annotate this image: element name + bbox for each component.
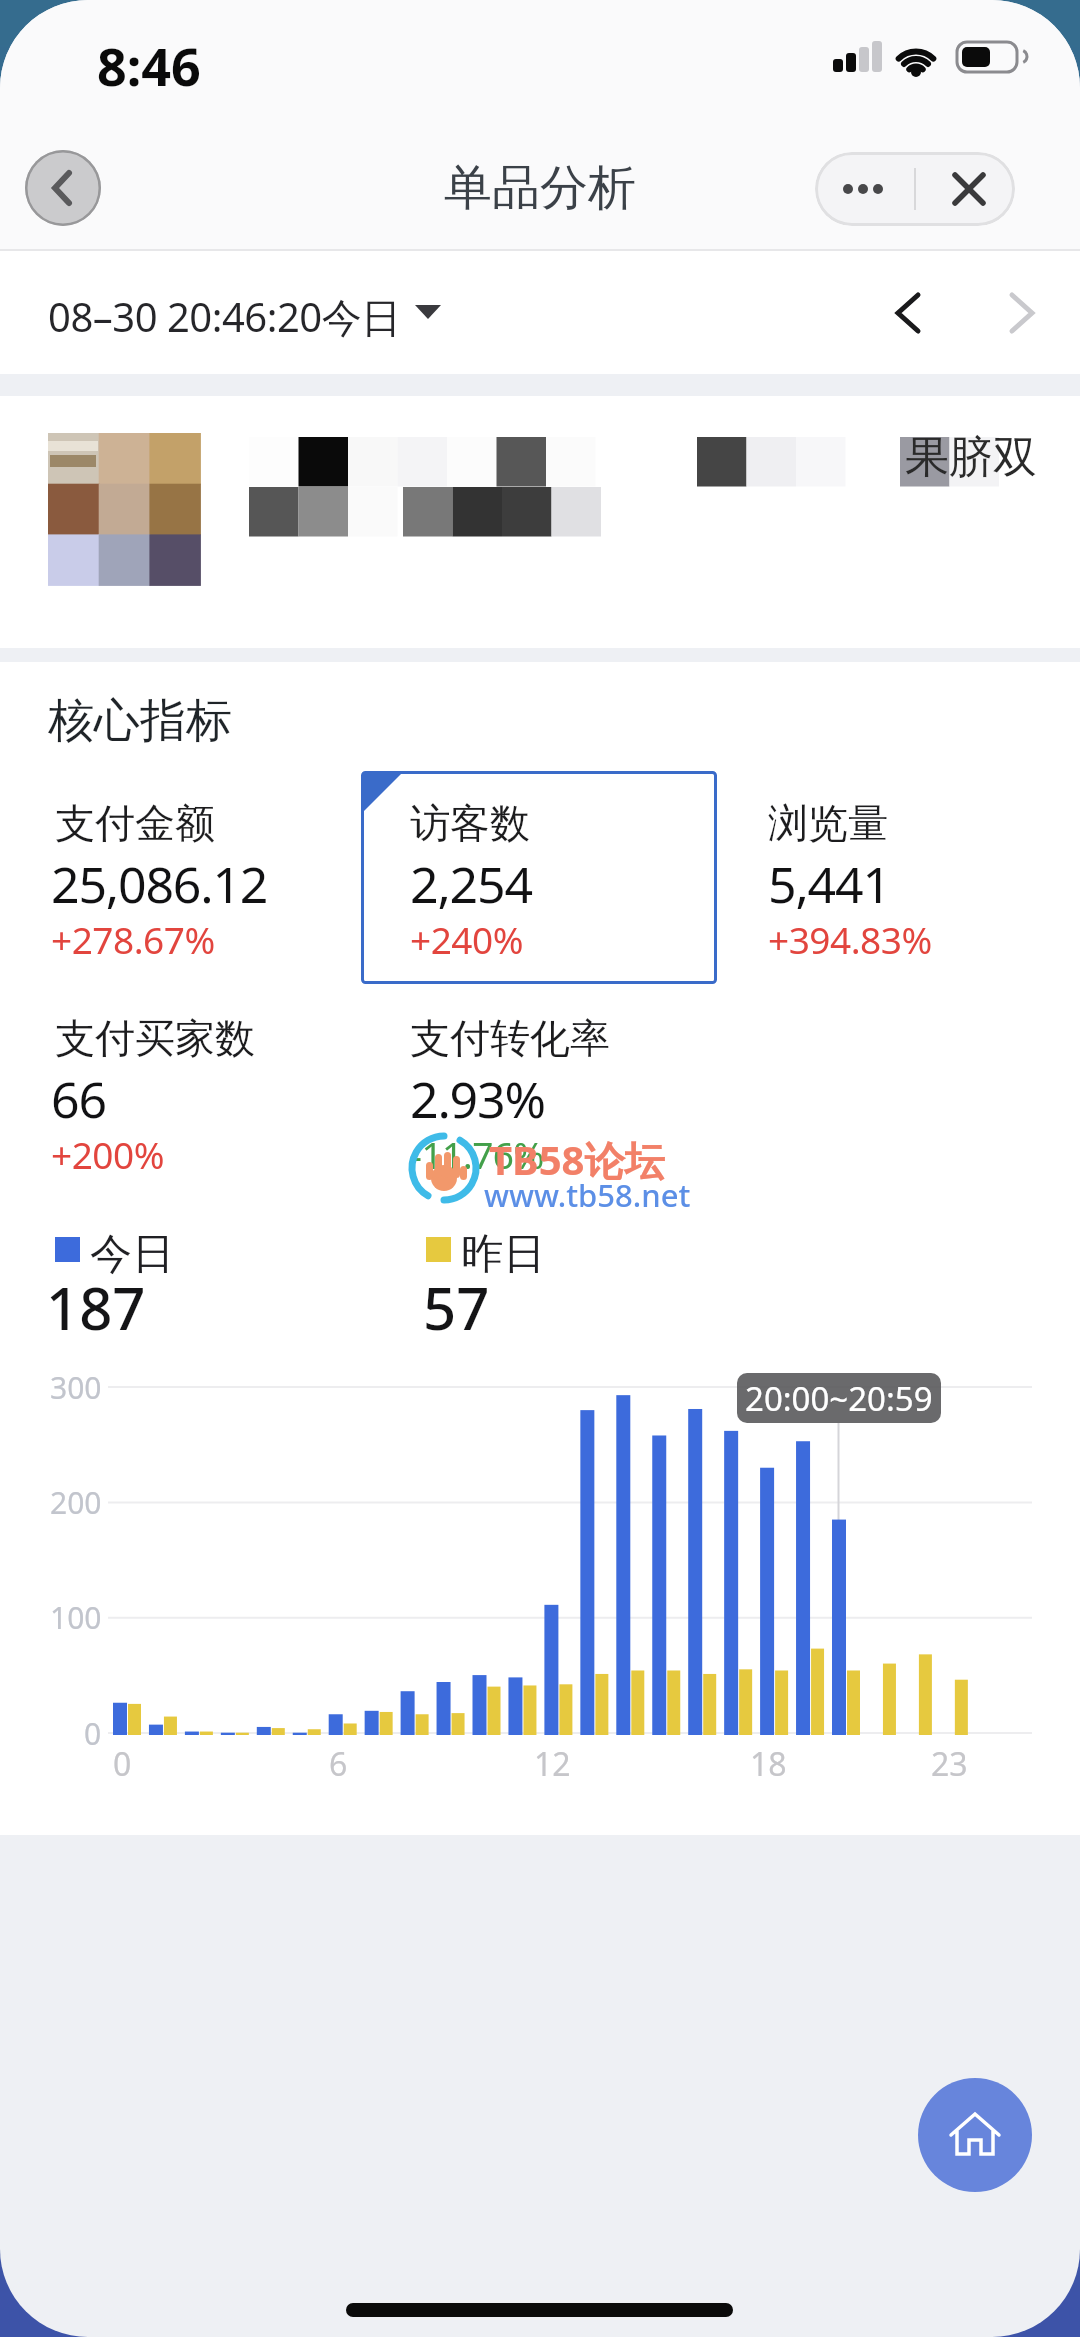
button[interactable] [915, 152, 1015, 226]
staticText: TB58论坛 [489, 1132, 665, 1187]
staticText: 25,086.12 [51, 850, 268, 918]
button[interactable] [25, 150, 101, 226]
staticText: 23 [931, 1742, 968, 1784]
staticText: 6 [329, 1742, 348, 1784]
staticText: 200 [50, 1482, 102, 1523]
staticText: 12 [534, 1742, 571, 1784]
staticText: 果脐双 [905, 430, 1037, 485]
staticText: 支付转化率 [410, 1013, 610, 1063]
staticText: 2,254 [410, 850, 532, 918]
button[interactable] [815, 152, 915, 226]
staticText: 单品分析 [444, 158, 636, 218]
staticText: 0 [84, 1713, 102, 1754]
staticText: 66 [51, 1065, 106, 1133]
staticText: 访客数 [410, 798, 530, 848]
staticText: 0 [113, 1742, 132, 1784]
staticText: 浏览量 [768, 798, 888, 848]
staticText: 5,441 [768, 850, 890, 918]
staticText: 57 [423, 1268, 490, 1347]
staticText: 187 [46, 1268, 146, 1347]
button[interactable] [361, 771, 717, 984]
staticText: +278.67% [51, 914, 215, 964]
staticText: 20:00~20:59 [745, 1376, 933, 1421]
staticText: 2.93% [410, 1065, 545, 1133]
button[interactable]: 08–30 20:46:20今日 [0, 251, 1080, 374]
staticText: +240% [410, 914, 523, 964]
staticText: 支付金额 [55, 798, 215, 848]
staticText: 支付买家数 [55, 1013, 255, 1063]
staticText: 18 [750, 1742, 787, 1784]
staticText: 100 [50, 1597, 102, 1638]
staticText: www.tb58.net [484, 1174, 691, 1216]
staticText: 昨日 [461, 1228, 545, 1281]
button[interactable] [918, 2078, 1032, 2192]
staticText: 今日 [90, 1228, 174, 1281]
staticText: +394.83% [768, 914, 932, 964]
staticText: +200% [51, 1129, 164, 1179]
staticText: -11.76% [410, 1129, 544, 1179]
staticText: 核心指标 [48, 692, 232, 750]
staticText: 8:46 [97, 30, 201, 101]
staticText: 300 [50, 1367, 102, 1408]
staticText: 08–30 20:46:20今日 [48, 289, 401, 344]
